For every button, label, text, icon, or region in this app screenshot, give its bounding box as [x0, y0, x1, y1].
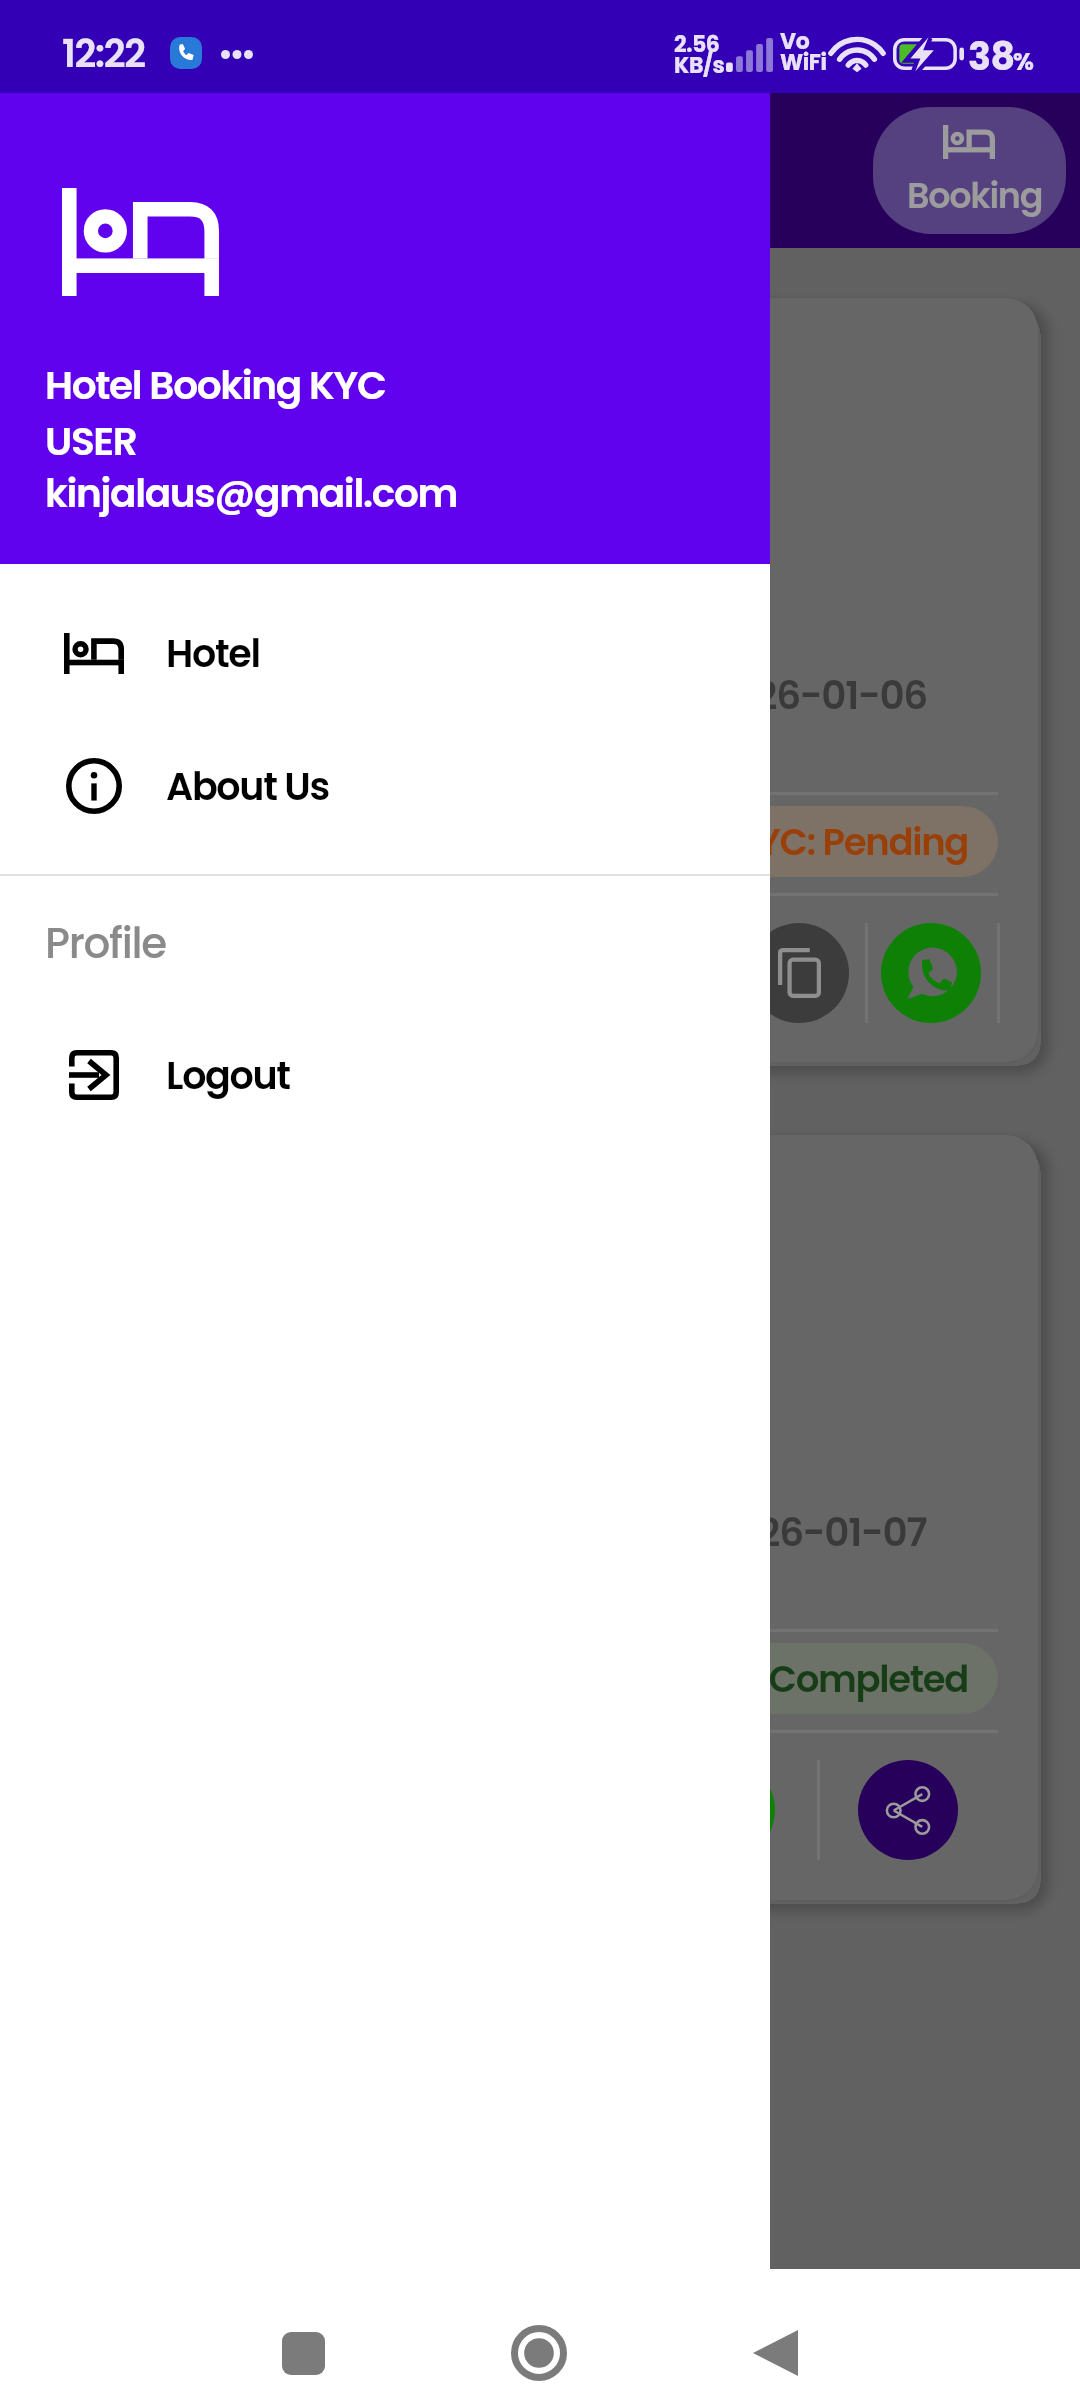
staticText: Logout: [166, 1049, 290, 1102]
staticText: Check Out : 2026-01-07: [493, 1505, 927, 1560]
staticText: WiFi: [780, 47, 827, 78]
staticText: Vo: [780, 26, 810, 57]
staticText: KYC: Completed: [680, 1653, 969, 1705]
button[interactable]: Share: [858, 1760, 958, 1860]
staticText: KYC: Pending: [734, 816, 969, 868]
button[interactable]: Logout: [0, 1008, 770, 1142]
staticText: Booking: [907, 171, 1043, 220]
staticText: Hotel Booking KYC: [45, 358, 386, 413]
staticText: 2.56: [674, 29, 720, 60]
staticText: %: [1013, 45, 1033, 79]
staticText: Profile: [45, 914, 166, 973]
staticText: kinjalaus@gmail.com: [45, 466, 458, 521]
button[interactable]: WhatsApp: [675, 1760, 775, 1860]
staticText: Hotel: [166, 627, 260, 680]
button[interactable]: Check Out : 2026-01-06: [42, 298, 1038, 1062]
button[interactable]: WhatsApp: [881, 923, 981, 1023]
staticText: Check Out : 2026-01-06: [490, 668, 927, 723]
button[interactable]: Copy: [749, 923, 849, 1023]
button[interactable]: Home: [479, 2293, 599, 2400]
button[interactable]: About Us: [0, 719, 770, 853]
button[interactable]: Check Out : 2026-01-07: [42, 1135, 1038, 1900]
staticText: About Us: [166, 760, 329, 813]
staticText: KB/s: [674, 50, 725, 81]
staticText: 38: [968, 30, 1015, 83]
staticText: 12:22: [62, 27, 145, 80]
button[interactable]: Back: [715, 2293, 835, 2400]
staticText: USER: [45, 414, 137, 469]
button[interactable]: Recents: [243, 2293, 363, 2400]
button[interactable]: Booking: [873, 107, 1066, 234]
button[interactable]: Hotel: [0, 586, 770, 720]
